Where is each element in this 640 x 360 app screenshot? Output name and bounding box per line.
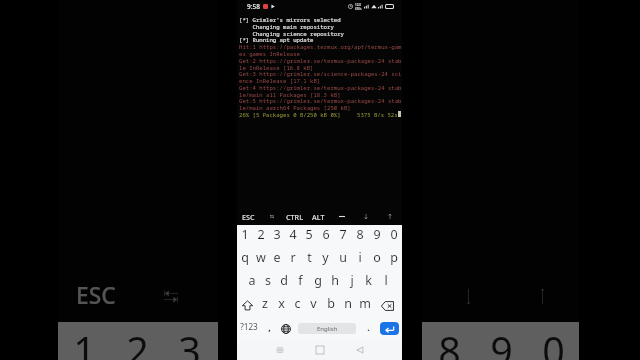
button[interactable]: Change language [277, 317, 294, 340]
button[interactable]: k [360, 271, 377, 294]
staticText: s [265, 272, 271, 289]
button[interactable]: 2 [111, 322, 163, 360]
button[interactable]: r [285, 248, 301, 271]
button[interactable]: j [343, 271, 360, 294]
button[interactable]: 3 [163, 322, 215, 360]
staticText: 1 [241, 226, 249, 243]
button[interactable]: CTRL [208, 262, 283, 322]
button[interactable]: 0 [527, 322, 579, 360]
button[interactable]: CTRL [283, 206, 306, 225]
staticText: , [268, 321, 271, 333]
button[interactable]: Recents [260, 339, 300, 360]
staticText: Get:4 https://grimler.se/termux-packages… [239, 84, 402, 92]
button[interactable]: 9 [368, 225, 385, 248]
button[interactable]: e [269, 248, 285, 271]
staticText: ence InRelease [17.1 kB] [239, 77, 321, 85]
button[interactable]: n [339, 294, 356, 317]
button[interactable]: Tab [260, 206, 283, 225]
button[interactable]: Minus [357, 262, 431, 322]
staticText: r [290, 249, 296, 266]
button[interactable]: English [298, 323, 356, 334]
staticText: h [331, 272, 339, 289]
button[interactable]: 7 [371, 322, 423, 360]
button[interactable]: y [317, 248, 334, 271]
button[interactable]: p [385, 248, 402, 271]
button[interactable]: 5 [301, 225, 317, 248]
staticText: 1 [73, 324, 96, 360]
button[interactable]: ESC [58, 262, 133, 322]
button[interactable]: 1 [237, 225, 253, 248]
button[interactable]: Back [340, 339, 380, 360]
staticText: ?123 [240, 321, 258, 332]
button[interactable]: 6 [317, 225, 334, 248]
button[interactable]: 6 [319, 322, 371, 360]
button[interactable]: 3 [269, 225, 285, 248]
staticText: 6 [322, 226, 330, 243]
staticText: ESC [242, 212, 255, 222]
other: Up [536, 289, 549, 304]
staticText: o [373, 249, 381, 266]
button[interactable]: d [276, 271, 292, 294]
button[interactable]: h [326, 271, 343, 294]
button[interactable]: ALT [283, 262, 357, 322]
button[interactable]: 7 [334, 225, 351, 248]
button[interactable]: 4 [285, 225, 301, 248]
button[interactable]: x [273, 294, 289, 317]
other: Minus [386, 288, 403, 304]
button[interactable]: 8 [423, 322, 475, 360]
staticText: d [280, 272, 288, 289]
button[interactable]: b [322, 294, 339, 317]
button[interactable]: w [253, 248, 269, 271]
button[interactable]: u [334, 248, 351, 271]
staticText: l [384, 272, 388, 289]
button[interactable]: t [301, 248, 317, 271]
staticText: a [248, 272, 256, 289]
staticText: j [350, 272, 354, 289]
button[interactable]: 5 [267, 322, 319, 360]
button[interactable]: Up [378, 206, 402, 225]
button[interactable]: Backspace [373, 294, 402, 317]
button[interactable]: ALT [306, 206, 330, 225]
staticText: 3 [273, 226, 281, 243]
button[interactable]: . [360, 317, 377, 340]
button[interactable]: l [377, 271, 394, 294]
staticText: v [310, 295, 317, 312]
button[interactable]: Tab [133, 262, 208, 322]
button[interactable]: Home [300, 339, 340, 360]
button[interactable]: v [305, 294, 322, 317]
button[interactable]: Down [354, 206, 378, 225]
button[interactable]: 8 [351, 225, 368, 248]
staticText: Get:5 https://grimler.se/termux-packages… [239, 97, 402, 105]
button[interactable]: 1 [58, 322, 111, 360]
button[interactable]: o [368, 248, 385, 271]
button[interactable]: 9 [475, 322, 527, 360]
button[interactable]: g [309, 271, 326, 294]
button[interactable]: i [351, 248, 368, 271]
button[interactable]: Shift [237, 294, 257, 317]
button[interactable]: q [237, 248, 253, 271]
button[interactable]: 0 [385, 225, 402, 248]
button[interactable]: Minus [330, 206, 354, 225]
button[interactable]: 2 [253, 225, 269, 248]
button[interactable]: a [244, 271, 260, 294]
button[interactable]: c [289, 294, 305, 317]
button[interactable]: Enter [380, 322, 399, 335]
staticText: i [358, 249, 362, 266]
staticText: Get:2 https://grimler.se/termux-packages… [239, 57, 402, 65]
staticText: 6 [334, 324, 357, 360]
staticText: Get:3 https://grimler.se/science-package… [239, 70, 402, 78]
button[interactable]: ?123 [237, 317, 261, 340]
button[interactable]: ESC [237, 206, 260, 225]
button[interactable]: m [356, 294, 373, 317]
button[interactable]: s [260, 271, 276, 294]
other: Tab [270, 215, 274, 218]
button[interactable]: , [261, 317, 277, 340]
staticText: 9 [490, 324, 513, 360]
staticText: 9:58 [247, 2, 260, 11]
staticText: 0 [390, 226, 398, 243]
button[interactable]: z [257, 294, 273, 317]
button[interactable]: 4 [215, 322, 267, 360]
button[interactable]: f [292, 271, 309, 294]
